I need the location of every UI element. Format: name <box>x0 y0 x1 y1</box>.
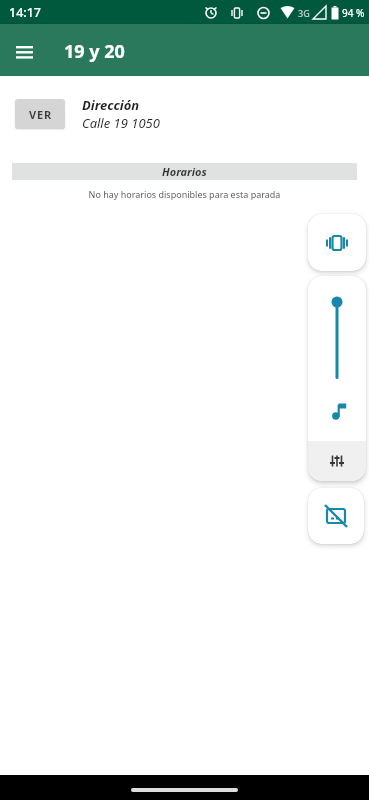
button[interactable] <box>308 441 366 481</box>
staticText: 19 y 20 <box>64 39 125 64</box>
staticText: 3G <box>298 7 310 19</box>
button[interactable] <box>308 214 366 271</box>
staticText: 14:17 <box>9 4 42 21</box>
staticText: Calle 19 1050 <box>82 114 160 132</box>
staticText: Dirección <box>82 96 140 114</box>
button[interactable]: VER <box>15 99 65 129</box>
staticText: Horarios <box>162 164 207 179</box>
staticText: No hay horarios disponibles para esta pa… <box>0 188 369 200</box>
button[interactable] <box>308 276 366 441</box>
button[interactable] <box>308 488 364 544</box>
button[interactable] <box>0 24 48 76</box>
staticText: 94 % <box>342 6 365 20</box>
staticText: VER <box>29 107 52 122</box>
